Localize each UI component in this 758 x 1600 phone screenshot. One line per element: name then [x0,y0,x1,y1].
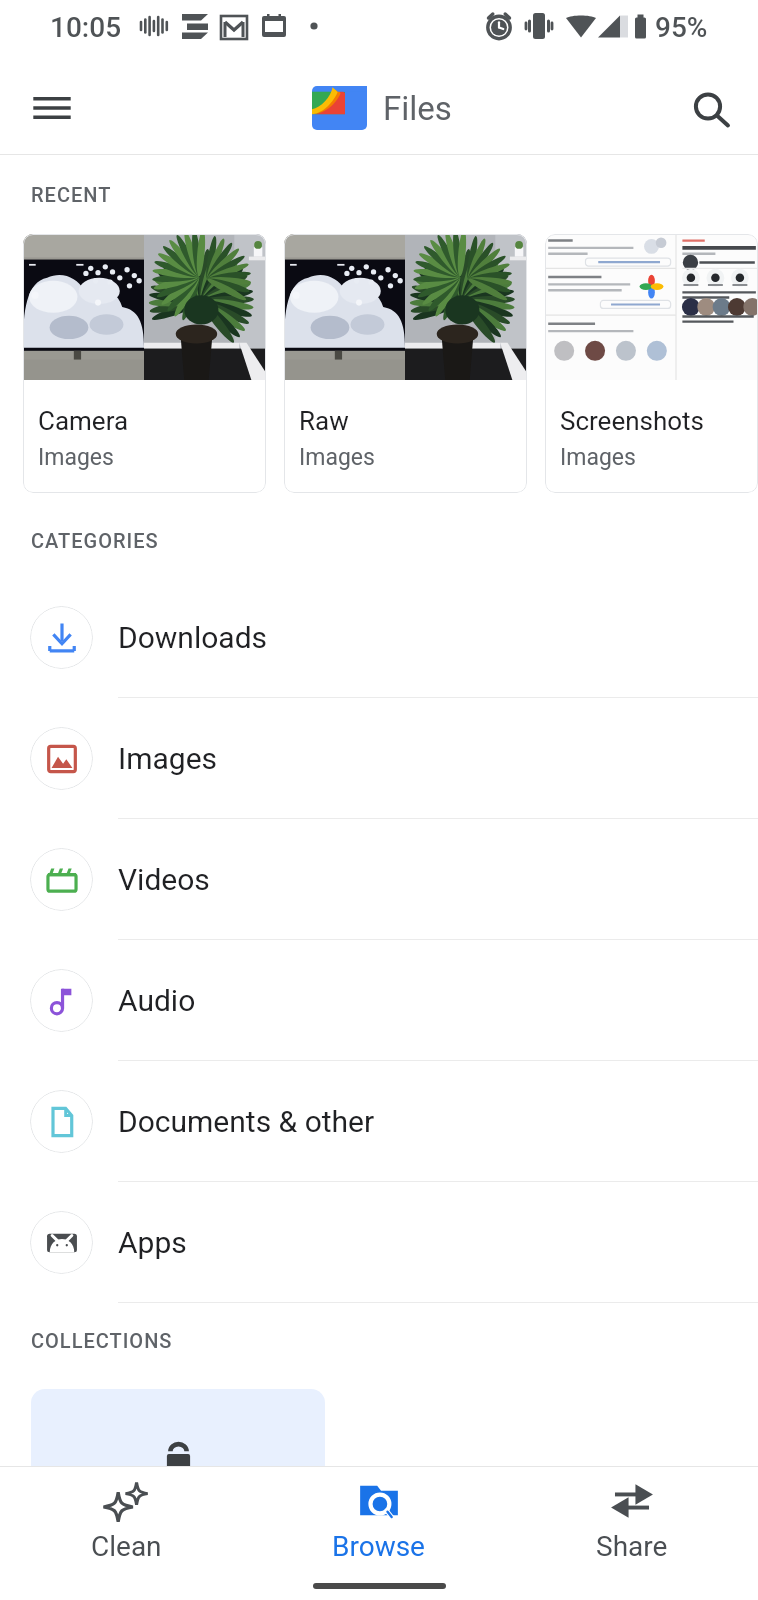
button[interactable]: Downloads [0,577,758,697]
staticText: Clean [91,1530,162,1563]
staticText: Screenshots [560,406,705,436]
staticText: Images [118,741,218,776]
staticText: 10:05 [50,11,122,44]
staticText: Images [299,444,375,471]
staticText: Share [596,1530,668,1563]
staticText: COLLECTIONS [31,1329,173,1352]
button[interactable]: Raw [284,234,527,493]
staticText: Browse [332,1530,425,1563]
staticText: Camera [38,406,129,436]
staticText: Images [560,444,636,471]
button[interactable]: Open navigation menu [8,60,95,155]
button[interactable]: Videos [0,819,758,939]
staticText: Files [383,89,452,128]
button[interactable]: Clean [0,1467,252,1573]
staticText: Documents & other [118,1104,375,1139]
button[interactable]: Screenshots [545,234,758,493]
button[interactable] [31,1389,325,1549]
staticText: 95% [655,11,708,44]
staticText: Raw [299,406,349,436]
button[interactable]: Share [505,1467,758,1573]
staticText: RECENT [31,183,112,206]
button[interactable]: Documents & other [0,1061,758,1181]
staticText: Images [38,444,114,471]
staticText: Videos [118,862,210,897]
button[interactable]: Audio [0,940,758,1060]
staticText: CATEGORIES [31,529,159,552]
staticText: Downloads [118,620,268,655]
staticText: Audio [118,983,196,1018]
staticText: Apps [118,1225,187,1260]
button[interactable]: Browse [252,1467,505,1573]
button[interactable]: Apps [0,1182,758,1302]
button[interactable]: Search [666,60,753,155]
button[interactable]: Camera [23,234,266,493]
button[interactable]: Images [0,698,758,818]
